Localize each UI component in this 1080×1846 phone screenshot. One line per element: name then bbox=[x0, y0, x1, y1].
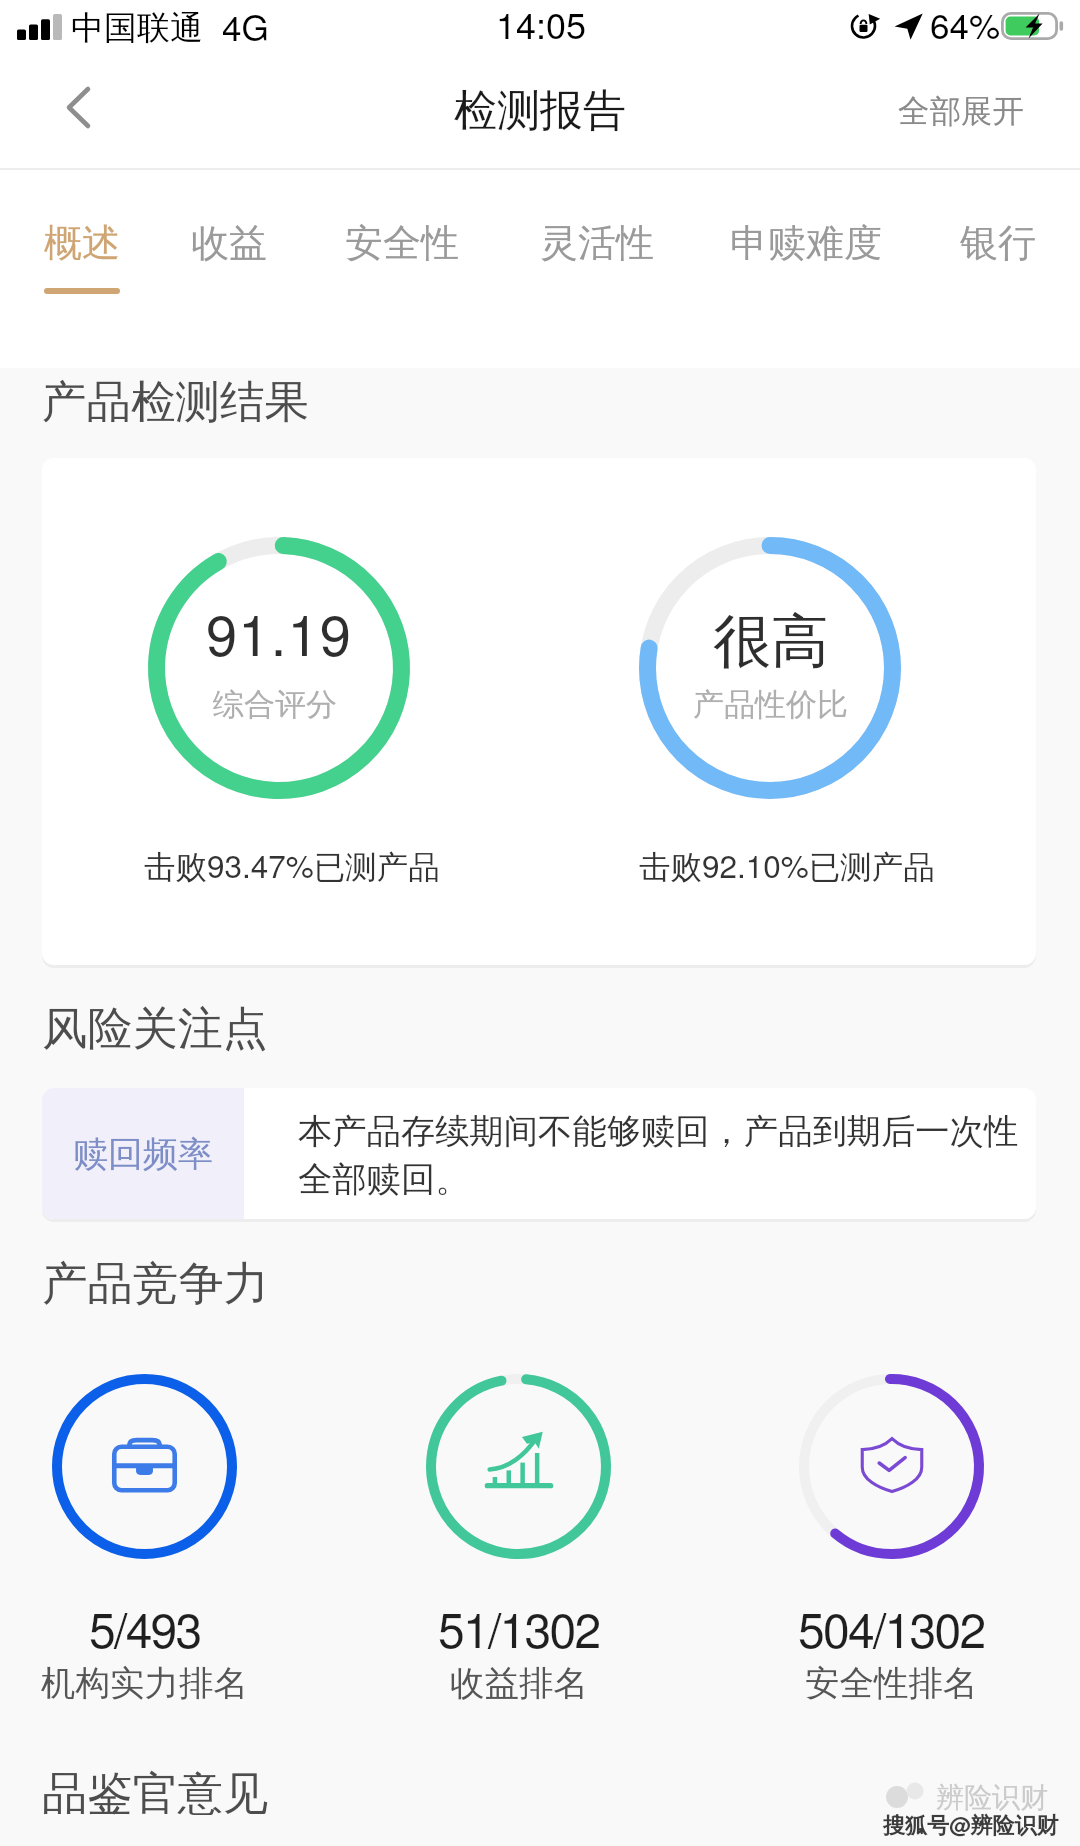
button[interactable]: 504/1302 bbox=[741, 1374, 1041, 1734]
staticText: 产品竞争力 bbox=[42, 1255, 269, 1312]
button[interactable]: 灵活性 bbox=[517, 170, 677, 368]
staticText: 中国联通 bbox=[71, 7, 203, 49]
button[interactable]: 51/1302 bbox=[368, 1374, 668, 1734]
staticText: 全部展开 bbox=[898, 92, 1024, 132]
button[interactable]: 银行 bbox=[937, 170, 1058, 368]
staticText: 91.19 bbox=[206, 592, 353, 672]
staticText: 安全性 bbox=[345, 219, 459, 267]
staticText: 504/1302 bbox=[798, 1593, 985, 1662]
button[interactable]: 安全性 bbox=[322, 170, 482, 368]
staticText: 搜狐号@辨险识财 bbox=[883, 1808, 1059, 1840]
staticText: 14:05 bbox=[496, 0, 587, 50]
staticText: 产品检测结果 bbox=[42, 374, 309, 430]
staticText: 64% bbox=[930, 0, 1001, 49]
staticText: 4G bbox=[222, 1, 269, 51]
staticText: 5/493 bbox=[89, 1593, 201, 1662]
staticText: 灵活性 bbox=[540, 219, 654, 267]
staticText: 收益 bbox=[191, 219, 267, 267]
staticText: 机构实力排名 bbox=[41, 1662, 248, 1705]
staticText: 检测报告 bbox=[454, 84, 626, 138]
staticText: 综合评分 bbox=[213, 685, 337, 724]
staticText: 概述 bbox=[44, 219, 120, 267]
staticText: 产品性价比 bbox=[693, 685, 848, 724]
staticText: 风险关注点 bbox=[42, 1000, 268, 1057]
staticText: 赎回频率 bbox=[73, 1132, 213, 1176]
staticText: 收益排名 bbox=[450, 1662, 588, 1705]
staticText: 很高 bbox=[713, 605, 829, 678]
staticText: 银行 bbox=[960, 219, 1036, 267]
button[interactable]: 收益 bbox=[168, 170, 289, 368]
staticText: 安全性排名 bbox=[805, 1662, 978, 1705]
button[interactable]: 返回 bbox=[47, 71, 127, 143]
button[interactable]: 申赎难度 bbox=[707, 170, 905, 368]
staticText: 本产品存续期间不能够赎回，产品到期后一次性全部赎回。 bbox=[298, 1110, 1024, 1201]
staticText: 辨险识财 bbox=[936, 1780, 1048, 1815]
button[interactable]: 5/493 bbox=[0, 1374, 294, 1734]
staticText: 申赎难度 bbox=[730, 219, 882, 267]
button[interactable]: 全部展开 bbox=[890, 78, 1032, 150]
staticText: 击败93.47%已测产品 bbox=[144, 842, 440, 888]
staticText: 品鉴官意见 bbox=[42, 1765, 268, 1822]
staticText: 51/1302 bbox=[438, 1593, 600, 1662]
staticText: 击败92.10%已测产品 bbox=[639, 842, 935, 888]
button[interactable]: 概述 bbox=[21, 170, 142, 368]
